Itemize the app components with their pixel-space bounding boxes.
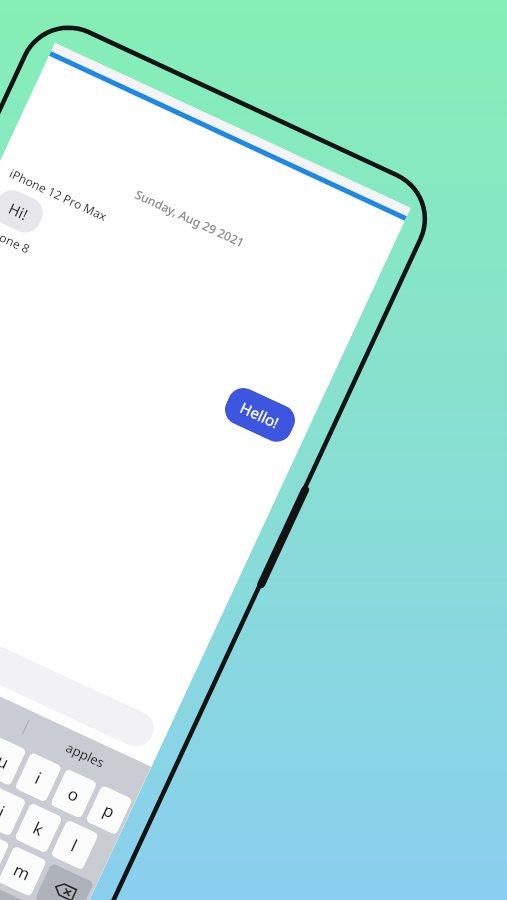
button[interactable]: i bbox=[14, 752, 62, 802]
button[interactable]: n bbox=[0, 828, 10, 880]
staticText: p bbox=[99, 798, 119, 823]
staticText: m bbox=[10, 858, 34, 885]
button[interactable]: k bbox=[14, 802, 63, 853]
staticText: u bbox=[0, 749, 13, 774]
staticText: i bbox=[31, 766, 46, 789]
staticText: iPhone 12 Pro Max bbox=[7, 165, 110, 224]
staticText: iPhone 8 bbox=[0, 221, 33, 257]
button[interactable]: google bbox=[0, 657, 32, 742]
staticText: j bbox=[0, 800, 9, 823]
button[interactable]: u bbox=[0, 735, 27, 786]
button[interactable]: apples bbox=[19, 712, 151, 798]
button[interactable]: l bbox=[50, 819, 99, 870]
staticText: apples bbox=[63, 738, 108, 772]
staticText: l bbox=[67, 834, 82, 857]
staticText: Sunday, Aug 29 2021 bbox=[21, 134, 358, 302]
button[interactable]: j bbox=[0, 786, 26, 837]
button[interactable]: Return bbox=[0, 883, 75, 900]
button[interactable]: Type a message already... bbox=[0, 565, 160, 753]
staticText: Hi! bbox=[5, 198, 32, 225]
staticText: k bbox=[29, 816, 48, 841]
button[interactable]: Hello! bbox=[220, 383, 300, 447]
button[interactable]: Hi! bbox=[0, 185, 48, 238]
button[interactable]: m bbox=[0, 845, 47, 897]
staticText: o bbox=[64, 782, 84, 807]
button[interactable]: o bbox=[50, 768, 97, 819]
button[interactable]: p bbox=[85, 785, 133, 835]
button[interactable]: Backspace bbox=[35, 863, 94, 900]
staticText: Hello! bbox=[237, 397, 283, 433]
